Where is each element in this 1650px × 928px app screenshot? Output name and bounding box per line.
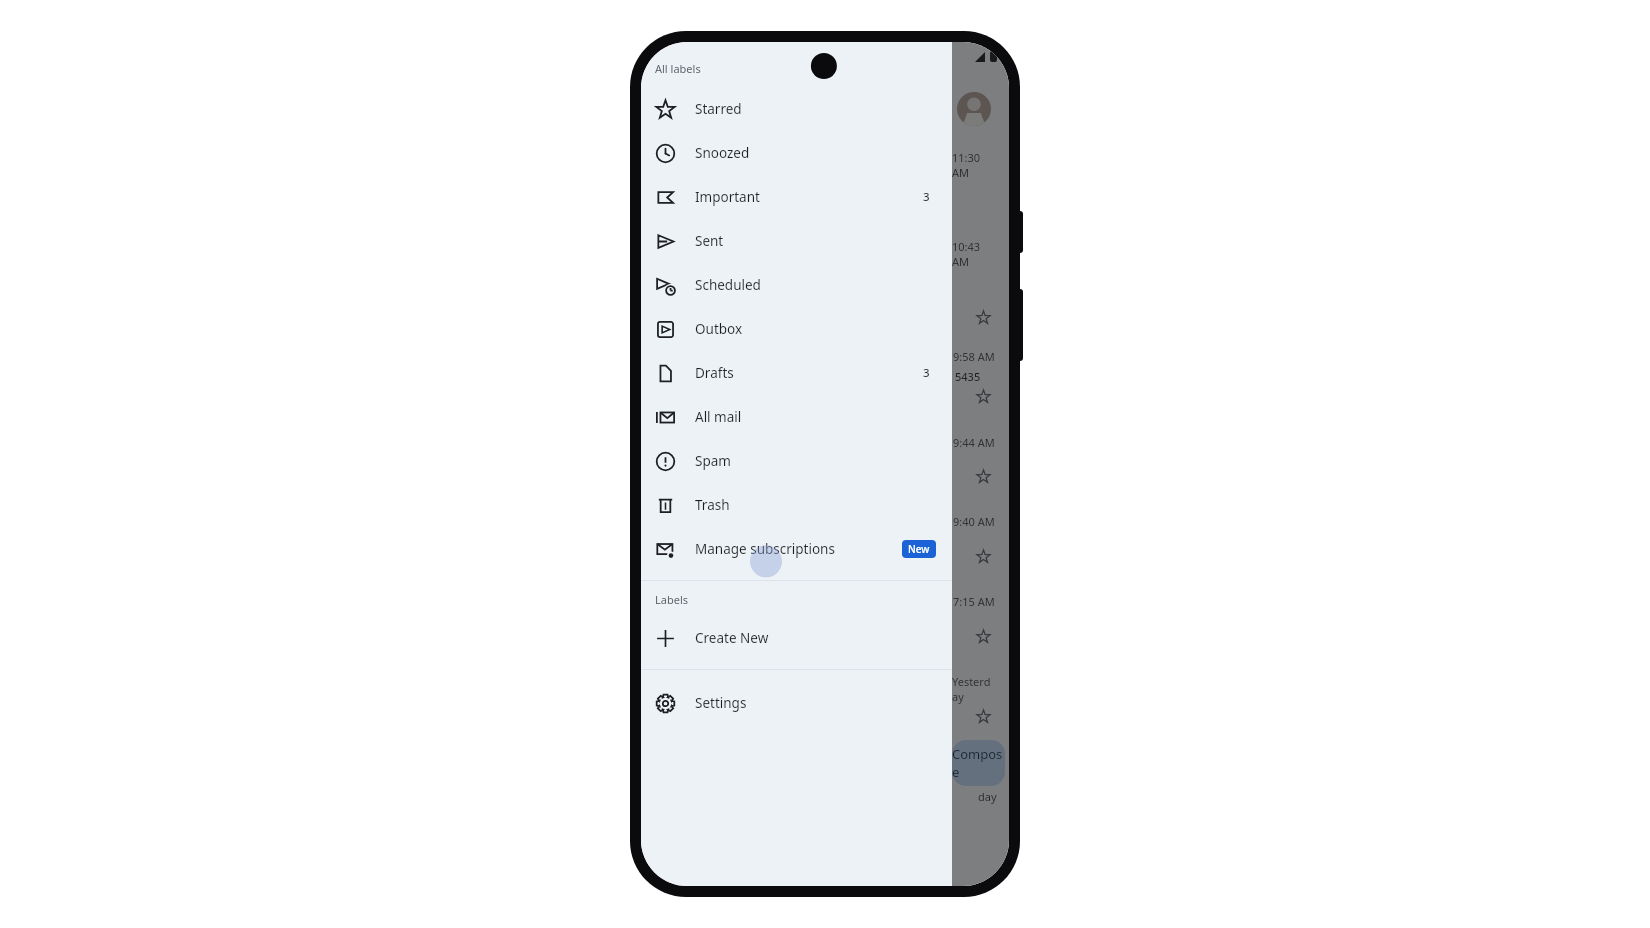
button[interactable]: Create New bbox=[641, 616, 952, 660]
button[interactable]: Trash bbox=[641, 483, 952, 527]
button[interactable]: Outbox bbox=[641, 307, 952, 351]
button[interactable]: Settings bbox=[641, 681, 952, 725]
staticText: New bbox=[908, 542, 930, 556]
staticText: Trash bbox=[695, 496, 730, 514]
button[interactable]: Starred bbox=[641, 87, 952, 131]
staticText: day bbox=[978, 789, 997, 804]
button[interactable]: Drafts bbox=[641, 351, 952, 395]
staticText: Yesterday bbox=[952, 674, 995, 704]
staticText: Settings bbox=[695, 694, 747, 712]
staticText: 9:58 AM bbox=[953, 349, 995, 364]
staticText: Snoozed bbox=[695, 144, 750, 162]
staticText: Labels bbox=[655, 592, 689, 607]
staticText: 5435 bbox=[955, 369, 981, 384]
staticText: Sent bbox=[695, 232, 724, 250]
button[interactable]: Manage subscriptions bbox=[641, 527, 952, 571]
staticText: 11:30 AM bbox=[952, 150, 995, 180]
button[interactable]: Compose bbox=[952, 740, 1005, 786]
staticText: 9:44 AM bbox=[953, 435, 995, 450]
staticText: Starred bbox=[695, 100, 742, 118]
staticText: Create New bbox=[695, 629, 769, 647]
button[interactable]: All mail bbox=[641, 395, 952, 439]
button[interactable]: Important bbox=[641, 175, 952, 219]
staticText: 7:15 AM bbox=[953, 594, 995, 609]
staticText: 9:40 AM bbox=[953, 514, 995, 529]
staticText: 10:43 AM bbox=[952, 239, 995, 269]
staticText: Spam bbox=[695, 452, 731, 470]
staticText: Important bbox=[695, 188, 760, 206]
staticText: All mail bbox=[695, 408, 742, 426]
staticText: Outbox bbox=[695, 320, 743, 338]
staticText: Manage subscriptions bbox=[695, 540, 835, 558]
button[interactable]: Scheduled bbox=[641, 263, 952, 307]
staticText: All labels bbox=[655, 61, 701, 76]
button[interactable]: Sent bbox=[641, 219, 952, 263]
staticText: Drafts bbox=[695, 364, 734, 382]
staticText: Scheduled bbox=[695, 276, 761, 294]
staticText: 3 bbox=[923, 189, 930, 205]
staticText: Compose bbox=[952, 745, 1005, 781]
button[interactable]: Spam bbox=[641, 439, 952, 483]
staticText: 3 bbox=[923, 365, 930, 381]
button[interactable]: Snoozed bbox=[641, 131, 952, 175]
